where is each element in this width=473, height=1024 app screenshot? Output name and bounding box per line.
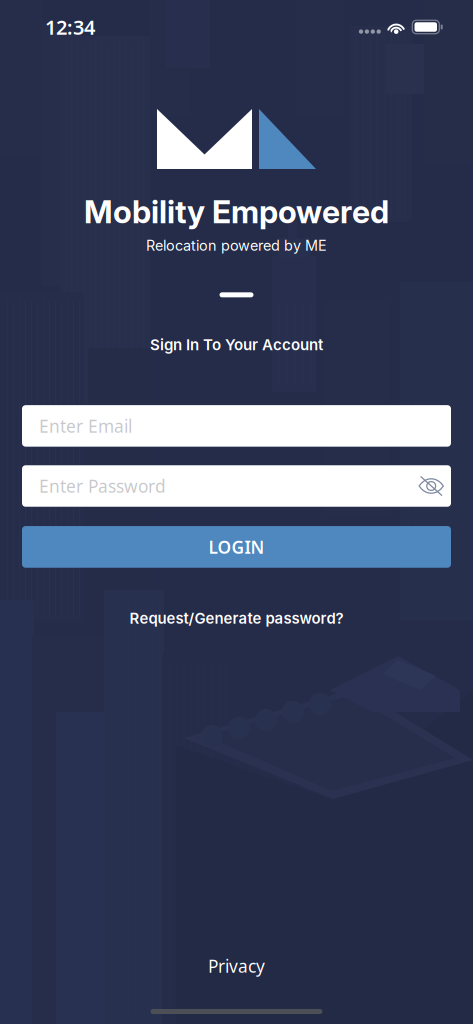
staticText: Privacy [208, 955, 265, 978]
staticText: Relocation powered by ME [146, 237, 327, 254]
staticText: Enter Password [39, 474, 166, 497]
staticText: Sign In To Your Account [150, 335, 323, 354]
button[interactable]: Enter Email [22, 405, 451, 447]
button[interactable]: Privacy [208, 955, 265, 978]
button[interactable]: LOGIN [22, 526, 451, 568]
staticText: LOGIN [208, 535, 264, 558]
staticText: Mobility Empowered [84, 193, 389, 231]
staticText: 12:34 [45, 14, 95, 40]
button[interactable]: Enter Password [22, 465, 451, 507]
staticText: Enter Email [39, 414, 132, 437]
staticText: Request/Generate password? [129, 609, 343, 627]
button[interactable]: Request/Generate password? [129, 609, 343, 627]
